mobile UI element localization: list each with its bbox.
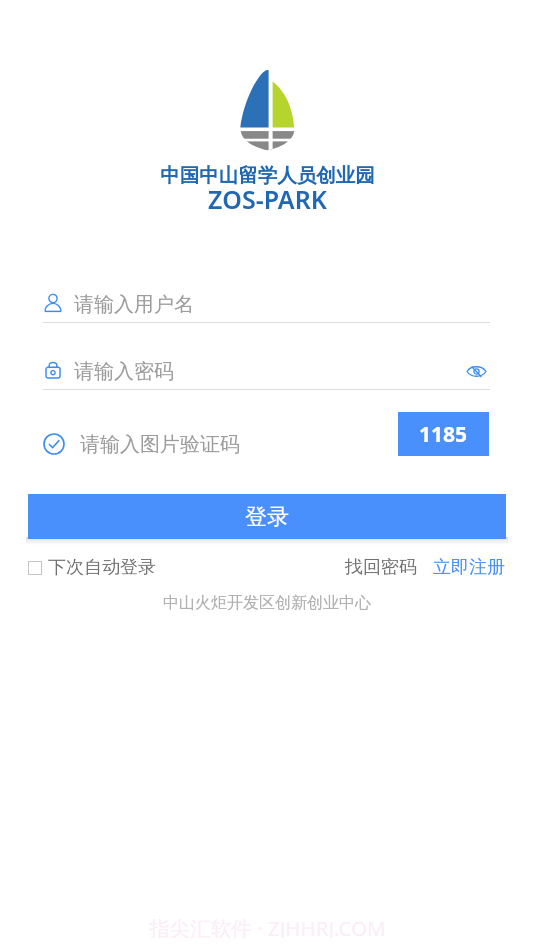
button[interactable]: 请输入图片验证码 xyxy=(43,422,240,466)
button[interactable]: 立即注册 xyxy=(433,556,505,579)
staticText: 请输入图片验证码 xyxy=(80,432,240,457)
staticText: 中山火炬开发区创新创业中心 xyxy=(163,593,371,613)
staticText: 指尖汇软件 · ZJHHRJ.COM xyxy=(149,914,386,938)
staticText: 请输入用户名 xyxy=(74,292,194,317)
staticText: 登录 xyxy=(245,503,289,531)
button[interactable]: 登录 xyxy=(28,494,506,539)
staticText: 1185 xyxy=(419,420,468,449)
button[interactable]: 下次自动登录 xyxy=(28,556,156,579)
staticText: ZOS-PARK xyxy=(208,182,327,209)
button[interactable]: Show password xyxy=(462,357,490,385)
button[interactable]: 找回密码 xyxy=(345,556,417,579)
button[interactable]: 请输入用户名 xyxy=(43,282,490,326)
button[interactable]: 请输入密码 xyxy=(43,349,490,393)
staticText: 中国中山留学人员创业园 xyxy=(160,163,375,188)
staticText: 下次自动登录 xyxy=(48,556,156,579)
button[interactable]: Refresh captcha xyxy=(398,412,489,456)
staticText: 请输入密码 xyxy=(74,359,174,384)
